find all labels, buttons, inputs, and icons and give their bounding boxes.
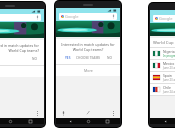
button[interactable]: Recent apps xyxy=(102,118,112,124)
button[interactable]: Interested in match updates for World Cu… xyxy=(56,39,120,64)
staticText: In progress 1 - 0 xyxy=(163,54,175,58)
staticText: YES xyxy=(65,56,71,60)
button[interactable]: YES xyxy=(63,55,73,61)
other: Voice search xyxy=(112,14,115,19)
staticText: Google xyxy=(159,16,173,21)
other: Voice search xyxy=(36,15,39,20)
button[interactable]: Mexico xyxy=(150,60,175,71)
staticText: Nigeria xyxy=(163,49,175,54)
button[interactable]: NO xyxy=(105,55,114,61)
button[interactable]: Google xyxy=(59,13,117,20)
staticText: World Cup xyxy=(153,40,174,46)
button[interactable]: Magic xyxy=(84,109,92,117)
button[interactable]: Nigeria xyxy=(150,48,175,59)
button[interactable]: Back xyxy=(65,118,75,124)
button[interactable]: More xyxy=(56,65,120,76)
button[interactable]: Chile xyxy=(150,84,175,95)
staticText: More xyxy=(84,68,93,73)
button[interactable]: Google xyxy=(0,14,41,21)
button[interactable]: Spain xyxy=(150,72,175,83)
button[interactable]: Interested in match updates for World Cu… xyxy=(0,40,44,65)
button[interactable]: Voice search xyxy=(59,109,67,117)
staticText: Google xyxy=(65,14,79,19)
staticText: CHOOSE TEAMS xyxy=(76,56,101,60)
button[interactable]: Home xyxy=(5,118,15,124)
staticText: Interested in match updates for World Cu… xyxy=(61,42,115,52)
button[interactable]: Back xyxy=(160,118,170,124)
button[interactable]: Recent apps xyxy=(25,118,35,124)
staticText: NO xyxy=(32,57,37,61)
staticText: Interested in match updates for World Cu… xyxy=(0,43,39,53)
staticText: Chile xyxy=(163,85,171,90)
staticText: Spain xyxy=(163,73,172,78)
button[interactable]: World Cup xyxy=(150,38,175,47)
button[interactable]: More options xyxy=(109,109,117,117)
staticText: June 23 at 1 PM xyxy=(163,66,175,70)
button[interactable]: More options xyxy=(33,109,41,117)
staticText: Mexico xyxy=(163,61,175,66)
staticText: June 23 at 4 PM xyxy=(163,78,175,82)
staticText: June 24 at 1 PM xyxy=(163,90,175,94)
staticText: NO xyxy=(107,56,112,60)
button[interactable]: NO xyxy=(30,56,39,62)
button[interactable]: Google xyxy=(153,15,175,22)
button[interactable]: Home xyxy=(83,118,93,124)
button[interactable]: CHOOSE TEAMS xyxy=(74,55,103,61)
